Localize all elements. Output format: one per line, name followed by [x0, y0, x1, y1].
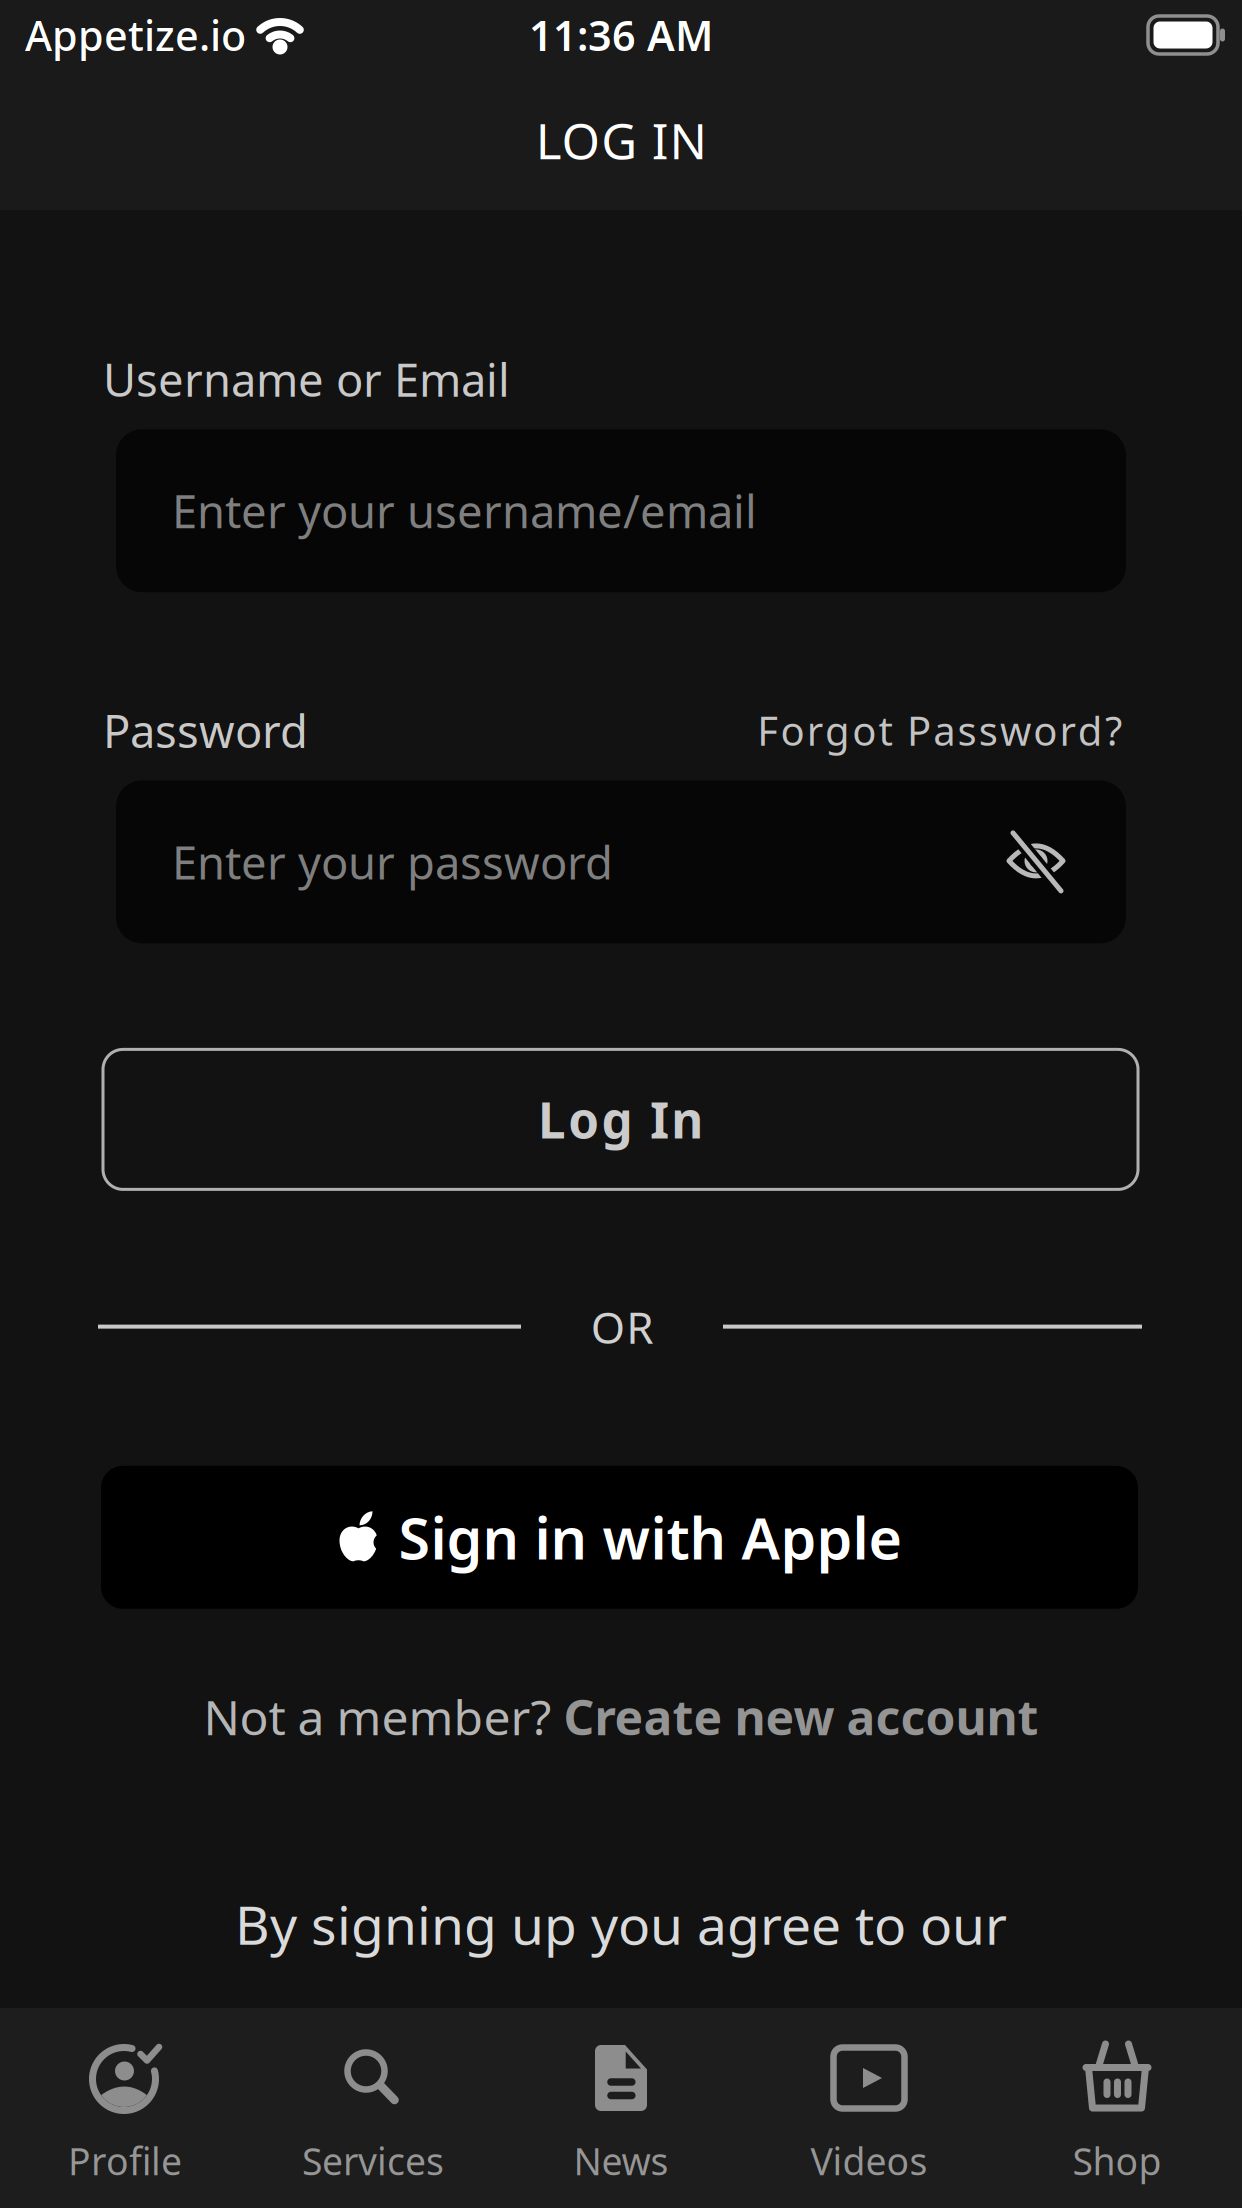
staticText: News: [573, 2136, 668, 2186]
staticText: Sign in with Apple: [398, 1499, 902, 1575]
staticText: Not a member?: [203, 1685, 563, 1748]
staticText: Services: [302, 2136, 444, 2186]
staticText: Forgot Password?: [757, 704, 1122, 757]
staticText: Videos: [810, 2136, 927, 2186]
staticText: Enter your username/email: [172, 481, 757, 541]
staticText: Username or Email: [103, 349, 510, 409]
staticText: Enter your password: [172, 832, 613, 892]
button[interactable]: Videos: [745, 2008, 993, 2208]
staticText: Log In: [538, 1087, 703, 1152]
button[interactable]: Profile: [1, 2008, 249, 2208]
staticText: Appetize.io: [25, 8, 246, 62]
button[interactable]: Shop: [993, 2008, 1241, 2208]
staticText: Password: [103, 700, 308, 760]
button[interactable]: Forgot Password?: [642, 704, 1122, 757]
button[interactable]: Not a member?: [203, 1685, 1038, 1748]
staticText: LOG IN: [536, 107, 706, 173]
button[interactable]: News: [497, 2008, 745, 2208]
staticText: Profile: [68, 2136, 182, 2186]
staticText: 11:36 AM: [529, 8, 713, 62]
button[interactable]: Log In: [0, 1049, 1242, 1189]
button[interactable]: Show password: [1006, 834, 1066, 890]
staticText: Create new account: [563, 1685, 1038, 1748]
staticText: By signing up you agree to our: [235, 1889, 1007, 1959]
staticText: OR: [591, 1297, 653, 1356]
button[interactable]: Services: [249, 2008, 497, 2208]
button[interactable]: Sign in with Apple: [0, 1466, 1242, 1609]
staticText: Shop: [1072, 2136, 1161, 2186]
